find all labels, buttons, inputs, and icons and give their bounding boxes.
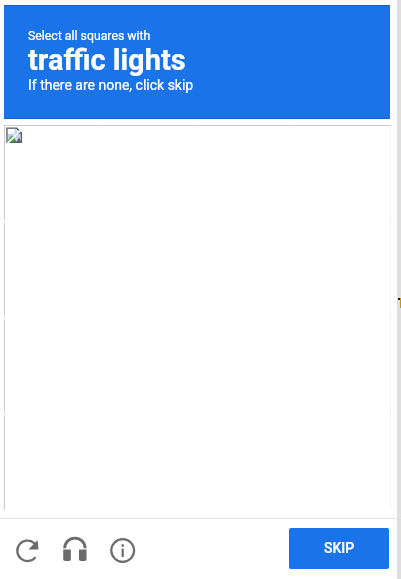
- button[interactable]: Image tile row 4 column 1: [4, 414, 100, 510]
- button[interactable]: Get an audio challenge: [62, 535, 88, 561]
- staticText: Select all squares with: [28, 29, 151, 43]
- button[interactable]: Image tile row 1 column 4: [294, 125, 391, 222]
- staticText: If there are none, click skip: [28, 77, 194, 93]
- button[interactable]: Image tile row 1 column 3: [197, 125, 294, 222]
- button[interactable]: SKIP: [289, 528, 389, 569]
- button[interactable]: Help: [108, 536, 138, 566]
- button[interactable]: Image tile row 2 column 1: [4, 222, 100, 318]
- button[interactable]: Image tile row 3 column 1: [4, 318, 100, 414]
- button[interactable]: Image tile row 1 column 2: [100, 125, 197, 222]
- button[interactable]: Image tile row 1 column 1: [4, 125, 100, 222]
- staticText: traffic lights: [28, 43, 186, 77]
- staticText: SKIP: [324, 540, 355, 556]
- button[interactable]: Get a new challenge: [15, 538, 40, 563]
